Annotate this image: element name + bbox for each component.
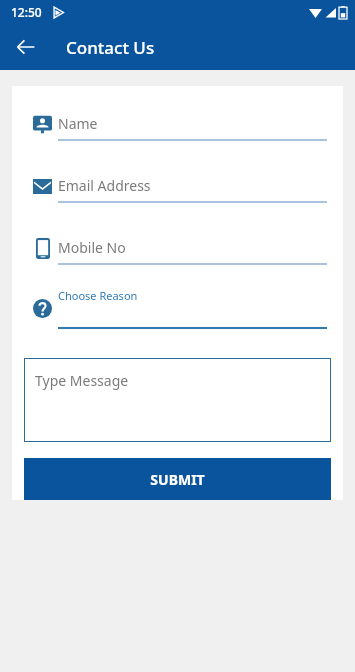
button[interactable]: Name	[27, 108, 327, 141]
button[interactable]: SUBMIT	[24, 458, 331, 500]
staticText: Mobile No	[58, 238, 126, 257]
button[interactable]: Email Address	[27, 170, 327, 203]
button[interactable]: Back	[10, 31, 42, 63]
button[interactable]: Mobile No	[27, 232, 327, 265]
button[interactable]: Choose Reason	[27, 285, 327, 332]
staticText: Name	[58, 114, 98, 133]
staticText: SUBMIT	[150, 470, 205, 489]
staticText: 12:50	[11, 4, 42, 20]
staticText: Contact Us	[66, 36, 155, 59]
staticText: Email Address	[58, 176, 151, 195]
staticText: Choose Reason	[58, 288, 138, 303]
button[interactable]: Type Message	[24, 358, 331, 442]
staticText: Type Message	[35, 371, 129, 390]
